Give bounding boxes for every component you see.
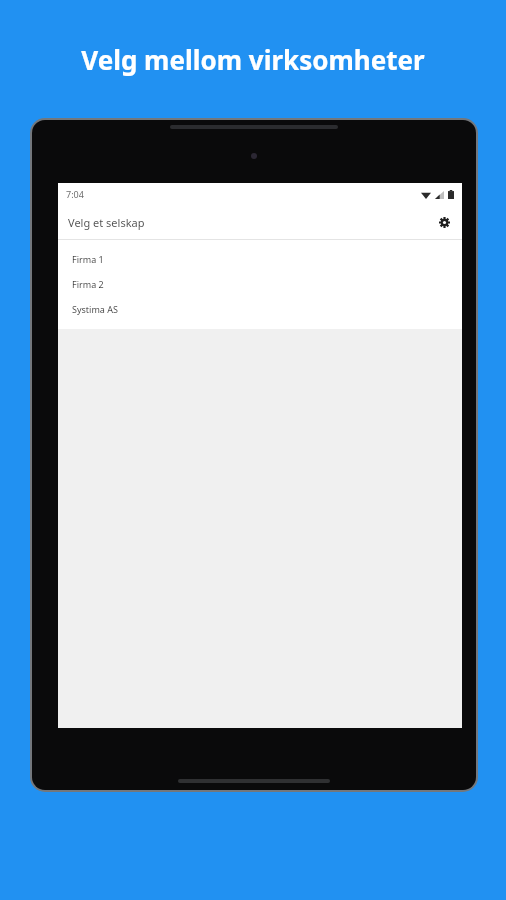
button[interactable]: Systima AS — [58, 296, 462, 321]
button[interactable]: Firma 2 — [58, 271, 462, 296]
button[interactable]: Settings — [432, 210, 456, 234]
staticText: Systima AS — [72, 303, 118, 315]
staticText: Firma 2 — [72, 278, 104, 290]
staticText: Velg et selskap — [68, 215, 145, 230]
button[interactable]: Firma 1 — [58, 246, 462, 271]
staticText: Velg mellom virksomheter — [0, 42, 506, 77]
staticText: 7:04 — [66, 188, 84, 200]
staticText: Firma 1 — [72, 253, 104, 265]
